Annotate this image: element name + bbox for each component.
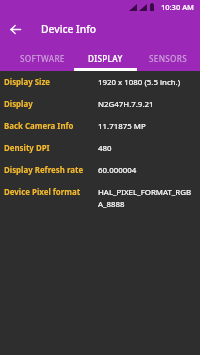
button[interactable]: Display bbox=[0, 99, 200, 121]
button[interactable]: Density DPI bbox=[0, 143, 200, 165]
button[interactable]: Display Refresh rate bbox=[0, 165, 200, 187]
button[interactable]: DISPLAY bbox=[74, 46, 137, 71]
staticText: 1920 x 1080 (5.5 inch.) bbox=[98, 77, 181, 88]
button[interactable]: Display Size bbox=[0, 77, 200, 99]
staticText: 10:30 AM bbox=[161, 2, 194, 12]
button[interactable]: SENSORS bbox=[137, 46, 200, 71]
staticText: Display Size bbox=[4, 77, 98, 88]
staticText: Density DPI bbox=[4, 143, 98, 154]
staticText: Display Refresh rate bbox=[4, 165, 98, 176]
staticText: 60.000004 bbox=[98, 165, 137, 176]
staticText: HAL_PIXEL_FORMAT_RGB A_8888 bbox=[98, 187, 192, 209]
staticText: Back Camera Info bbox=[4, 121, 98, 132]
button[interactable]: Navigate up bbox=[0, 14, 30, 44]
staticText: N2G47H.7.9.21 bbox=[98, 99, 154, 110]
button[interactable]: SOFTWARE bbox=[10, 46, 74, 71]
staticText: Display bbox=[4, 99, 98, 110]
staticText: SOFTWARE bbox=[20, 53, 65, 64]
staticText: Device Info bbox=[41, 22, 97, 36]
staticText: 480 bbox=[98, 143, 112, 154]
staticText: 11.71875 MP bbox=[98, 121, 146, 132]
button[interactable]: Back Camera Info bbox=[0, 121, 200, 143]
staticText: DISPLAY bbox=[88, 53, 123, 64]
button[interactable]: Device Pixel format bbox=[0, 187, 200, 209]
staticText: Device Pixel format bbox=[4, 187, 98, 198]
staticText: SENSORS bbox=[149, 53, 188, 64]
